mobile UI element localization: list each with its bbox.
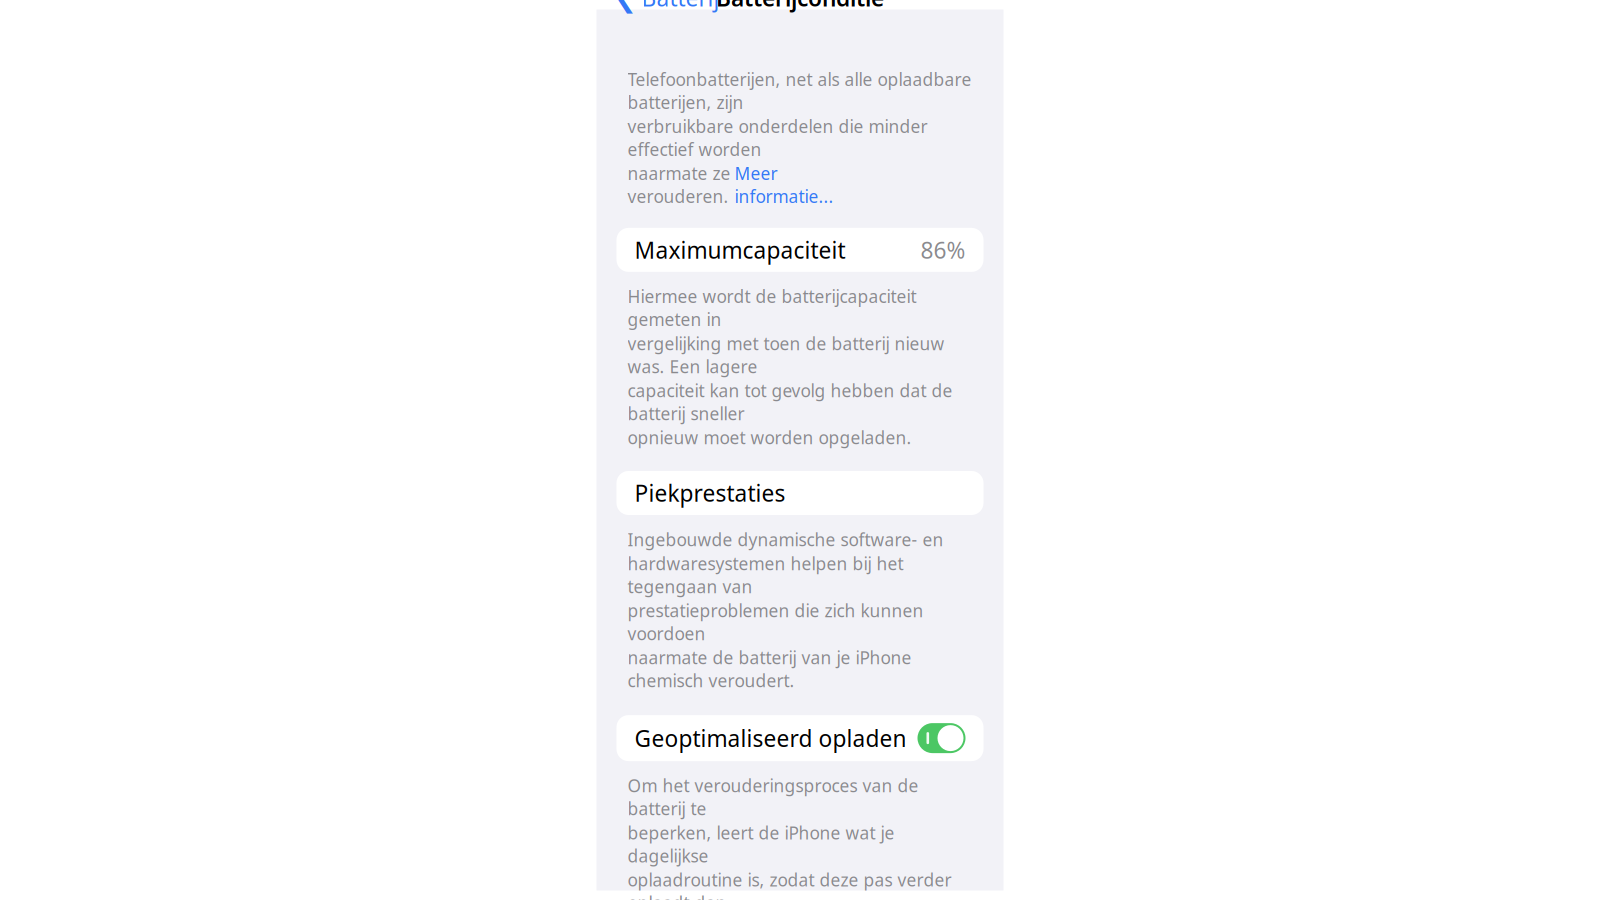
staticText: Hiermee wordt de batterijcapaciteit geme… [627,285,916,331]
button[interactable]: ❮ [604,0,729,21]
staticText: opnieuw moet worden opgeladen. [627,426,911,449]
button[interactable]: Piekprestaties [616,471,983,515]
staticText: Batterijconditie [716,0,884,13]
staticText: prestatieproblemen die zich kunnen voord… [627,599,923,645]
staticText: capaciteit kan tot gevolg hebben dat de … [627,379,952,425]
staticText: Telefoonbatterijen, net als alle oplaadb… [627,68,971,114]
staticText: beperken, leert de iPhone wat je dagelij… [627,821,894,867]
staticText: 86% [920,235,965,265]
staticText: verbruikbare onderdelen die minder effec… [627,115,927,161]
staticText: naarmate de batterij van je iPhone chemi… [627,646,911,692]
staticText: Geoptimaliseerd opladen [634,723,906,753]
button[interactable]: Geoptimaliseerd opladen [616,715,983,761]
staticText: Batterij [641,0,719,13]
staticText: Piekprestaties [634,478,785,508]
staticText: oplaadroutine is, zodat deze pas verder … [627,868,951,900]
staticText: vergelijking met toen de batterij nieuw … [627,332,944,378]
staticText: Om het verouderingsproces van de batteri… [627,774,918,820]
staticText: Meer informatie... [734,162,833,208]
staticText: naarmate ze verouderen. [627,162,730,208]
staticText: Maximumcapaciteit [634,235,845,265]
button[interactable]: Maximumcapaciteit [616,228,983,272]
staticText: ❮ [614,0,636,13]
button[interactable]: Meer informatie... [734,162,833,208]
staticText: hardwaresystemen helpen bij het tegengaa… [627,552,903,598]
staticText: Ingebouwde dynamische software- en [627,528,943,551]
